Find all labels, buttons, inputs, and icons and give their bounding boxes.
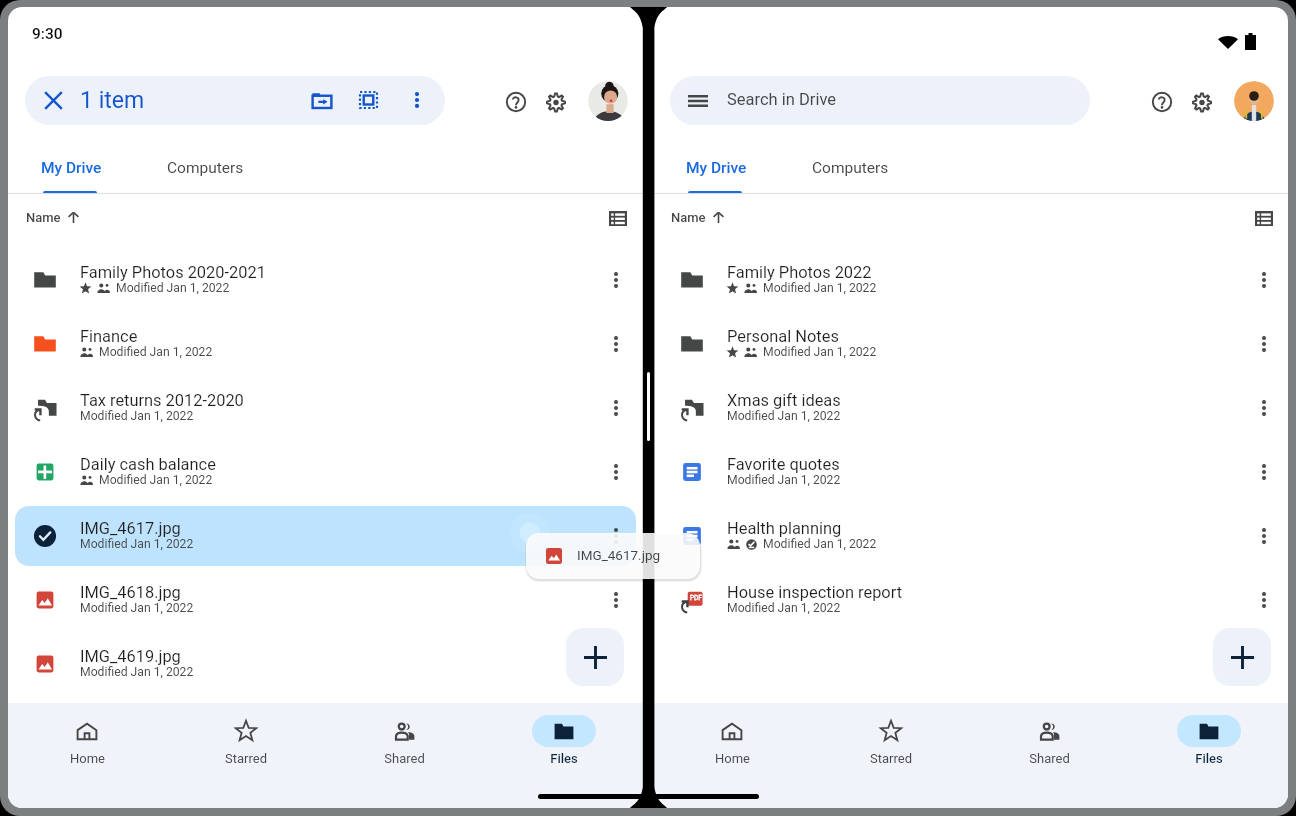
button[interactable]: More options	[602, 266, 630, 294]
staticText: Modified Jan 1, 2022	[763, 537, 877, 551]
button[interactable]: Close selection	[25, 76, 445, 125]
staticText: Daily cash balance	[80, 455, 216, 474]
button[interactable]: Select all	[353, 85, 383, 115]
staticText: Modified Jan 1, 2022	[80, 601, 194, 615]
button[interactable]: More options	[602, 394, 630, 422]
button[interactable]: Name	[667, 199, 728, 235]
staticText: Family Photos 2022	[727, 263, 872, 282]
button[interactable]: More options	[602, 586, 630, 614]
staticText: 9:30	[32, 25, 63, 43]
button[interactable]: Home	[8, 703, 166, 808]
button[interactable]: More options	[1250, 330, 1278, 358]
staticText: Favorite quotes	[727, 455, 840, 474]
button[interactable]: Starred	[166, 703, 325, 808]
staticText: Tax returns 2012-2020	[80, 391, 244, 410]
staticText: Health planning	[727, 519, 842, 538]
staticText: Modified Jan 1, 2022	[763, 281, 877, 295]
button[interactable]	[662, 506, 1277, 566]
button[interactable]: More options	[602, 522, 630, 550]
button[interactable]: More options	[602, 330, 630, 358]
staticText: Shared	[384, 751, 425, 766]
staticText: Shared	[1029, 751, 1070, 766]
button[interactable]: More options	[402, 85, 432, 115]
button[interactable]: Switch to grid view	[1249, 203, 1279, 233]
button[interactable]: Name	[22, 199, 83, 235]
button[interactable]: Create new	[1213, 628, 1271, 686]
button[interactable]: Help	[1146, 86, 1178, 118]
button[interactable]: More options	[1250, 394, 1278, 422]
staticText: Search in Drive	[727, 90, 837, 109]
button[interactable]: Account	[588, 81, 628, 121]
button[interactable]: Settings	[540, 86, 572, 118]
staticText: House inspection report	[727, 583, 903, 602]
staticText: Modified Jan 1, 2022	[80, 537, 194, 551]
staticText: Modified Jan 1, 2022	[727, 601, 841, 615]
staticText: Family Photos 2020-2021	[80, 263, 266, 282]
staticText: Modified Jan 1, 2022	[116, 281, 230, 295]
button[interactable]: Home	[653, 703, 811, 808]
button[interactable]: Close selection	[39, 86, 68, 115]
staticText: Name	[671, 210, 706, 225]
button[interactable]: Starred	[811, 703, 970, 808]
button[interactable]: Account	[1234, 81, 1274, 121]
staticText: Computers	[167, 159, 244, 177]
button[interactable]	[662, 250, 1277, 310]
staticText: IMG_4617.jpg	[80, 519, 181, 538]
staticText: Home	[715, 751, 750, 766]
button[interactable]: Create new	[566, 628, 624, 686]
button[interactable]: Files	[484, 703, 643, 808]
button[interactable]: My Drive	[666, 146, 766, 190]
button[interactable]: More options	[602, 458, 630, 486]
staticText: Files	[550, 751, 578, 766]
staticText: PDF	[690, 594, 702, 602]
button[interactable]: More options	[1250, 522, 1278, 550]
staticText: Computers	[812, 159, 889, 177]
button[interactable]: Computers	[790, 146, 910, 190]
button[interactable]	[662, 378, 1277, 438]
button[interactable]: More options	[1250, 266, 1278, 294]
button[interactable]: Switch to grid view	[603, 203, 633, 233]
staticText: Modified Jan 1, 2022	[727, 409, 841, 423]
staticText: Finance	[80, 327, 138, 346]
button[interactable]: Help	[500, 86, 532, 118]
button[interactable]: More options	[1250, 586, 1278, 614]
staticText: IMG_4618.jpg	[80, 583, 181, 602]
staticText: Modified Jan 1, 2022	[727, 473, 841, 487]
staticText: IMG_4619.jpg	[80, 647, 181, 666]
staticText: Name	[26, 210, 61, 225]
button[interactable]: Files	[1129, 703, 1288, 808]
staticText: Files	[1195, 751, 1223, 766]
button[interactable]: Shared	[970, 703, 1129, 808]
button[interactable]: Shared	[325, 703, 484, 808]
button[interactable]: Move to	[307, 85, 337, 115]
button[interactable]	[15, 442, 636, 502]
button[interactable]	[662, 442, 1277, 502]
button[interactable]	[15, 250, 636, 310]
staticText: Modified Jan 1, 2022	[99, 473, 213, 487]
staticText: My Drive	[41, 159, 102, 177]
staticText: Modified Jan 1, 2022	[80, 409, 194, 423]
button[interactable]: Menu	[684, 87, 712, 115]
button[interactable]	[15, 570, 636, 630]
button[interactable]: My Drive	[21, 146, 121, 190]
button[interactable]	[662, 570, 1277, 630]
button[interactable]	[662, 314, 1277, 374]
staticText: 1 item	[80, 87, 145, 114]
button[interactable]: Menu	[670, 76, 1090, 125]
button[interactable]: More options	[1250, 458, 1278, 486]
staticText: Xmas gift ideas	[727, 391, 841, 410]
button[interactable]: IMG_4617.jpg	[526, 533, 700, 579]
button[interactable]	[15, 378, 636, 438]
button[interactable]	[15, 314, 636, 374]
staticText: Modified Jan 1, 2022	[99, 345, 213, 359]
button[interactable]	[15, 634, 636, 694]
staticText: Personal Notes	[727, 327, 839, 346]
staticText: Starred	[225, 751, 267, 766]
button[interactable]: Settings	[1186, 86, 1218, 118]
staticText: Modified Jan 1, 2022	[763, 345, 877, 359]
staticText: Home	[70, 751, 105, 766]
staticText: Modified Jan 1, 2022	[80, 665, 194, 679]
button[interactable]	[15, 506, 636, 566]
staticText: IMG_4617.jpg	[577, 547, 661, 563]
button[interactable]: Computers	[145, 146, 265, 190]
